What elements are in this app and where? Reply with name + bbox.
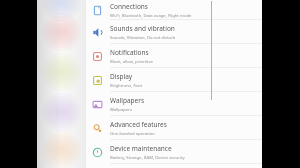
button[interactable]: Settings icon [86,0,262,20]
button[interactable]: Settings icon [86,116,262,140]
staticText: Sounds, Vibration, Do not disturb [110,35,176,41]
button[interactable]: Settings icon [86,44,262,68]
button[interactable]: Settings icon [86,68,262,92]
staticText: One-handed operation [110,131,155,137]
button[interactable]: Settings icon [86,20,262,44]
staticText: Connections [110,2,148,11]
staticText: Advanced features [110,120,167,129]
staticText: Wallpapers [110,96,145,105]
staticText: Wallpapers [110,107,132,113]
staticText: Wi-Fi, Bluetooth, Data usage, Flight mod… [110,13,192,19]
staticText: Device maintenance [110,144,172,153]
staticText: Brightness, Font [110,83,143,89]
other: Settings icon [92,147,103,158]
other: Settings icon [92,5,103,16]
other: Settings icon [92,51,103,62]
button[interactable]: Settings icon [86,140,262,164]
other: Settings icon [92,27,103,38]
other: Settings icon [92,123,103,134]
staticText: Block, allow, prioritise [110,59,153,65]
staticText: Battery, Storage, RAM, Device security [110,155,185,161]
staticText: Display [110,72,133,81]
button[interactable]: Settings icon [86,92,262,116]
other: Settings icon [92,99,103,110]
other: Settings icon [92,75,103,86]
staticText: Notifications [110,48,149,57]
staticText: Sounds and vibration [110,24,175,33]
